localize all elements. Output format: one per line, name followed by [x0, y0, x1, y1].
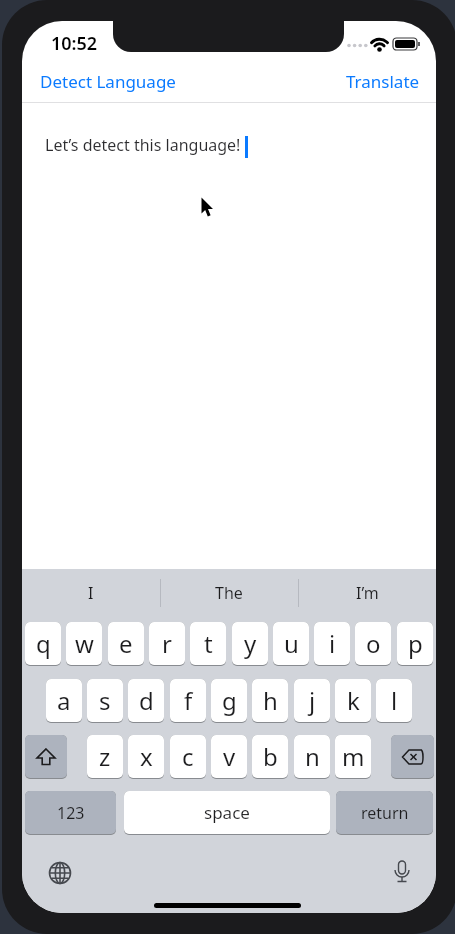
button[interactable]: I’m	[298, 577, 436, 609]
staticText: Translate	[346, 70, 420, 93]
button[interactable]: y	[232, 622, 268, 665]
button[interactable]: m	[335, 735, 371, 778]
staticText: k	[347, 684, 360, 717]
staticText: y	[244, 627, 257, 660]
button[interactable]: Let’s detect this language!	[22, 103, 436, 569]
staticText: I	[88, 582, 94, 604]
button[interactable]: l	[376, 679, 412, 722]
button[interactable]: s	[87, 679, 123, 722]
staticText: return	[361, 802, 409, 824]
staticText: Detect Language	[40, 70, 176, 93]
button[interactable]: I	[22, 577, 160, 609]
button[interactable]: t	[190, 622, 226, 665]
button[interactable]: The	[160, 577, 298, 609]
staticText: w	[75, 627, 94, 660]
button[interactable]	[25, 735, 67, 778]
staticText: Let’s detect this language!	[45, 134, 241, 156]
button[interactable]: n	[294, 735, 330, 778]
button[interactable]	[391, 735, 434, 778]
staticText: t	[204, 627, 213, 660]
staticText: I’m	[356, 582, 379, 604]
button[interactable]: f	[170, 679, 206, 722]
staticText: u	[284, 627, 299, 660]
button[interactable]: j	[294, 679, 330, 722]
button[interactable]: h	[252, 679, 288, 722]
staticText: g	[222, 684, 237, 717]
staticText: p	[408, 627, 423, 660]
button[interactable]: k	[335, 679, 371, 722]
staticText: r	[162, 627, 172, 660]
button[interactable]	[44, 857, 76, 889]
button[interactable]: o	[355, 622, 391, 665]
staticText: 10:52	[51, 31, 98, 56]
staticText: j	[309, 684, 316, 717]
staticText: f	[184, 684, 193, 717]
staticText: i	[329, 627, 336, 660]
button[interactable]: Translate	[272, 70, 420, 93]
button[interactable]: b	[252, 735, 288, 778]
staticText: l	[391, 684, 398, 717]
button[interactable]: q	[25, 622, 61, 665]
staticText: m	[342, 740, 365, 773]
button[interactable]: x	[128, 735, 164, 778]
staticText: x	[140, 740, 153, 773]
staticText: b	[263, 740, 278, 773]
staticText: 123	[57, 802, 85, 824]
staticText: v	[223, 740, 236, 773]
button[interactable]: e	[108, 622, 144, 665]
button[interactable]: a	[46, 679, 82, 722]
staticText: d	[139, 684, 154, 717]
staticText: a	[57, 684, 71, 717]
staticText: h	[263, 684, 278, 717]
button[interactable]: p	[397, 622, 433, 665]
staticText: e	[119, 627, 133, 660]
button[interactable]: z	[87, 735, 123, 778]
staticText: s	[99, 684, 111, 717]
button[interactable]: space	[124, 791, 330, 834]
button[interactable]: r	[149, 622, 185, 665]
button[interactable]: w	[66, 622, 102, 665]
staticText: n	[305, 740, 320, 773]
button[interactable]: c	[170, 735, 206, 778]
button[interactable]: d	[128, 679, 164, 722]
staticText: o	[366, 627, 381, 660]
staticText: The	[215, 582, 243, 604]
button[interactable]: g	[211, 679, 247, 722]
button[interactable]: Detect Language	[40, 70, 176, 93]
staticText: space	[204, 801, 250, 824]
staticText: c	[182, 740, 194, 773]
button[interactable]	[386, 857, 418, 889]
button[interactable]: return	[336, 791, 433, 834]
button[interactable]: v	[211, 735, 247, 778]
staticText: z	[99, 740, 111, 773]
staticText: q	[36, 627, 51, 660]
button[interactable]: i	[314, 622, 350, 665]
button[interactable]: u	[273, 622, 309, 665]
button[interactable]: 123	[25, 791, 116, 834]
